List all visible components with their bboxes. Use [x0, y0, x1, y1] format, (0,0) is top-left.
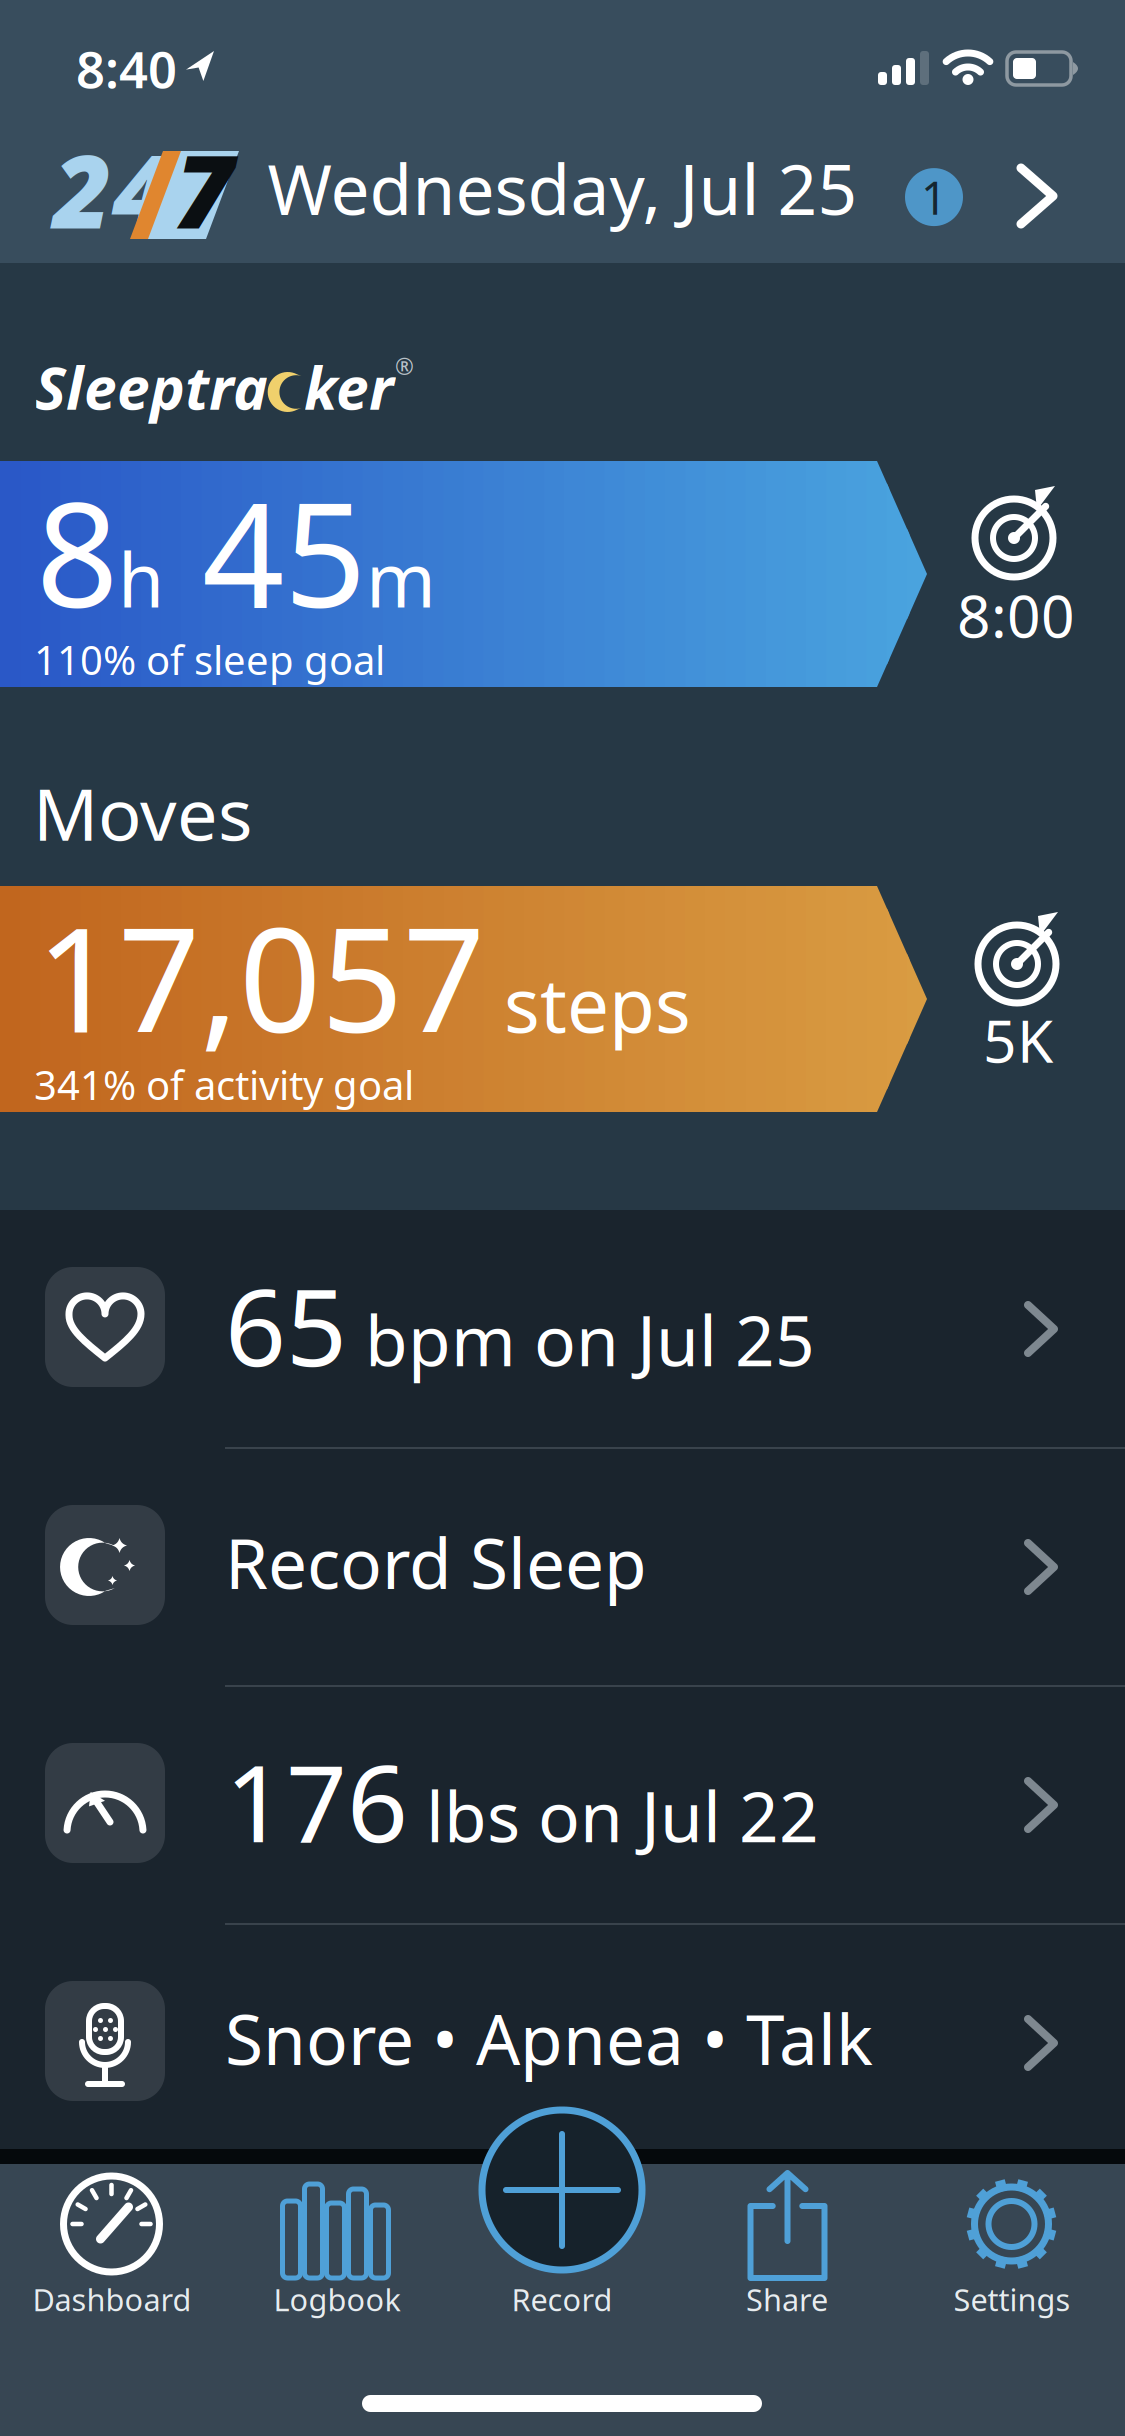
staticText: 65 — [225, 1254, 347, 1396]
button[interactable]: Sleep: 8h 45m, 110% of sleep goal, goal … — [0, 461, 1125, 687]
staticText: Logbook — [273, 2279, 400, 2320]
staticText: ® — [395, 351, 414, 381]
staticText: Dashboard — [32, 2279, 191, 2320]
button[interactable]: Logbook — [224, 2168, 449, 2338]
staticText: m — [366, 529, 436, 628]
button[interactable]: Settings — [899, 2168, 1124, 2338]
staticText: Moves — [33, 765, 252, 861]
staticText: 110% of sleep goal — [34, 633, 385, 686]
button[interactable]: Record — [482, 2110, 642, 2325]
staticText: steps — [485, 954, 691, 1053]
staticText: 17,057 — [36, 881, 485, 1072]
button[interactable]: Dashboard — [0, 2168, 224, 2338]
button[interactable]: Moves: 17,057 steps, 341% of activity go… — [0, 886, 1125, 1112]
staticText: Sleeptra — [35, 348, 268, 426]
button[interactable]: 1 notification — [905, 167, 963, 227]
staticText: Snore • Apnea • Talk — [225, 1992, 873, 2084]
button[interactable]: Record Sleep — [0, 1448, 1125, 1686]
staticText: 8:40 — [76, 35, 177, 102]
staticText: 24 — [53, 122, 171, 257]
staticText: 8 — [36, 456, 118, 647]
staticText: 45 — [202, 456, 366, 647]
staticText: 341% of activity goal — [34, 1058, 414, 1111]
staticText: lbs on Jul 22 — [408, 1769, 819, 1861]
staticText: 1 — [921, 167, 947, 227]
staticText: h — [118, 529, 202, 628]
staticText: bpm on Jul 25 — [347, 1293, 815, 1385]
staticText: Settings — [953, 2279, 1070, 2320]
staticText: Record — [511, 2279, 612, 2320]
staticText: Share — [746, 2279, 828, 2320]
staticText: 7 — [175, 122, 234, 257]
staticText: Record Sleep — [225, 1516, 647, 1608]
button[interactable]: Weight: 176 lbs on Jul 22 — [0, 1686, 1125, 1924]
staticText: 176 — [225, 1730, 408, 1872]
staticText: Wednesday, Jul 25 — [267, 142, 857, 234]
staticText: 5K — [983, 1001, 1053, 1079]
button[interactable]: Heart rate: 65 bpm on Jul 25 — [0, 1210, 1125, 1448]
button[interactable]: Next day — [1021, 168, 1053, 224]
button[interactable]: Share — [674, 2168, 899, 2338]
staticText: 8:00 — [957, 576, 1075, 654]
button[interactable]: Snore, Apnea, Talk recordings — [0, 1924, 1125, 2162]
staticText: ker — [304, 348, 394, 426]
